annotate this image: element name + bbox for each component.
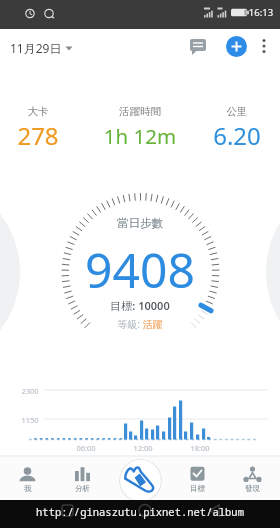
button[interactable]: 我 [6,460,49,498]
button[interactable] [119,459,162,502]
staticText: 活躍時間 [90,105,190,118]
staticText: http://ginaszutu.pixnet.net/album [0,505,280,519]
staticText: 1h 12m [85,122,195,150]
staticText: 公里 [197,105,277,118]
staticText: 發現 [245,484,260,493]
staticText: 等級: 活躍 [70,317,210,331]
staticText: 11月29日 [10,40,62,56]
button[interactable]: 發現 [231,460,274,498]
staticText: 9408 [40,237,240,302]
staticText: 當日步數 [80,216,200,230]
button[interactable] [226,36,247,57]
staticText: 12:00 [123,443,163,453]
staticText: 目標: 10000 [70,298,210,313]
staticText: 06:00 [66,443,106,453]
staticText: 6.20 [192,119,280,152]
staticText: 目標 [190,484,205,493]
button[interactable] [186,34,210,58]
staticText: 18:00 [180,443,220,453]
staticText: 278 [0,119,83,152]
staticText: 大卡 [0,105,78,118]
button[interactable]: 分析 [61,460,104,498]
staticText: 2300 [15,386,45,396]
staticText: 分析 [75,484,90,493]
button[interactable] [254,34,274,58]
staticText: 16:13 [241,6,280,19]
button[interactable]: 11月29日 [10,36,76,60]
staticText: 1150 [15,415,45,425]
staticText: 我 [24,484,32,493]
button[interactable]: 目標 [176,460,219,498]
